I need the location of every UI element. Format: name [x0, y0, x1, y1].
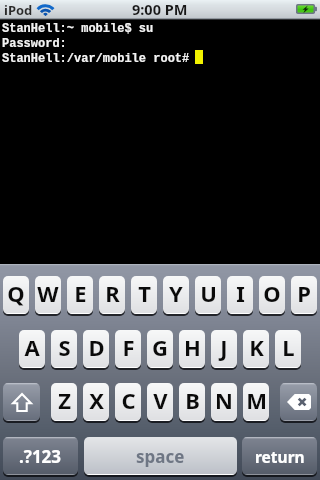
button[interactable]: Z [51, 383, 77, 421]
button[interactable]: A [19, 330, 45, 368]
staticText: F [122, 332, 135, 362]
button[interactable]: K [243, 330, 269, 368]
staticText: O [263, 278, 281, 308]
button[interactable]: return [242, 437, 317, 475]
staticText: D [88, 332, 105, 362]
staticText: space [136, 445, 185, 468]
staticText: K [249, 332, 264, 362]
button[interactable]: T [131, 276, 157, 314]
button[interactable]: W [35, 276, 61, 314]
staticText: W [37, 278, 59, 308]
staticText: StanHell:/var/mobile root# [2, 52, 190, 66]
staticText: M [246, 385, 267, 415]
button[interactable]: G [147, 330, 173, 368]
staticText: N [215, 385, 233, 415]
staticText: U [200, 278, 217, 308]
button[interactable]: E [67, 276, 93, 314]
button[interactable]: N [211, 383, 237, 421]
staticText: iPod [4, 1, 33, 19]
staticText: X [89, 385, 104, 415]
button[interactable]: O [259, 276, 285, 314]
button[interactable]: Shift [3, 383, 40, 421]
button[interactable]: R [99, 276, 125, 314]
button[interactable]: U [195, 276, 221, 314]
staticText: return [255, 446, 305, 467]
button[interactable]: J [211, 330, 237, 368]
staticText: .?123 [19, 445, 62, 468]
staticText: StanHell:~ mobile$ su [2, 22, 154, 36]
button[interactable]: Y [163, 276, 189, 314]
button[interactable]: Backspace [280, 383, 317, 421]
button[interactable]: space [84, 437, 237, 475]
button[interactable]: M [243, 383, 269, 421]
button[interactable]: D [83, 330, 109, 368]
button[interactable]: S [51, 330, 77, 368]
staticText: C [121, 385, 136, 415]
staticText: E [74, 278, 87, 308]
button[interactable]: P [291, 276, 317, 314]
staticText: I [236, 278, 245, 308]
staticText: T [138, 278, 151, 308]
button[interactable]: X [83, 383, 109, 421]
button[interactable]: H [179, 330, 205, 368]
staticText: G [152, 332, 168, 362]
button[interactable]: L [275, 330, 301, 368]
staticText: A [24, 332, 40, 362]
staticText: V [153, 385, 168, 415]
button[interactable]: B [179, 383, 205, 421]
button[interactable]: .?123 [3, 437, 78, 475]
staticText: B [185, 385, 200, 415]
button[interactable]: C [115, 383, 141, 421]
staticText: Y [169, 278, 183, 308]
staticText: R [105, 278, 120, 308]
staticText: Q [7, 278, 25, 308]
staticText: Password: [2, 37, 67, 51]
staticText: S [58, 332, 71, 362]
button[interactable]: I [227, 276, 253, 314]
staticText: J [220, 332, 228, 362]
staticText: P [297, 278, 311, 308]
button[interactable]: V [147, 383, 173, 421]
staticText: 9:00 PM [132, 0, 188, 19]
button[interactable]: F [115, 330, 141, 368]
staticText: H [184, 332, 201, 362]
button[interactable]: Q [3, 276, 29, 314]
staticText: L [282, 332, 295, 362]
staticText: Z [58, 385, 71, 415]
